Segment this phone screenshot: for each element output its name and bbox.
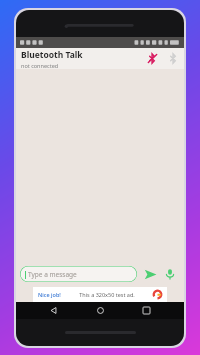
button[interactable]: Voice input — [160, 264, 180, 284]
button[interactable]: Recents — [138, 302, 155, 319]
staticText: Type a message — [28, 270, 77, 279]
button[interactable]: Back — [45, 302, 62, 319]
button[interactable]: Nice job! — [33, 287, 167, 302]
button[interactable]: Bluetooth off — [142, 48, 163, 69]
button[interactable]: Connect — [163, 48, 184, 69]
staticText: This a 320x50 test ad. — [61, 291, 153, 298]
button[interactable]: Send — [140, 264, 160, 284]
staticText: Bluetooth Talk — [21, 49, 83, 61]
button[interactable]: Home — [92, 302, 109, 319]
staticText: not connected — [21, 62, 59, 69]
staticText: Nice job! — [38, 291, 61, 298]
button[interactable]: Type a message — [20, 266, 137, 282]
